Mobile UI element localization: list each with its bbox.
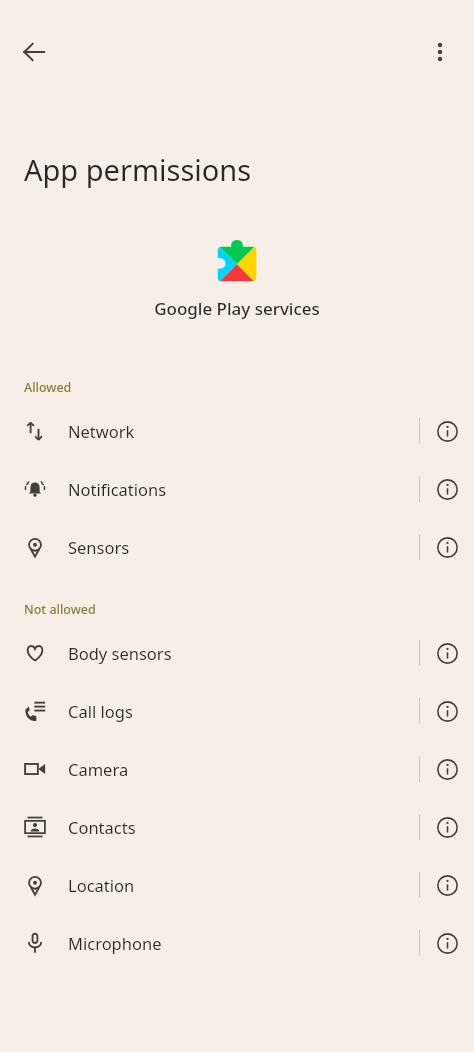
staticText: Location (68, 874, 419, 896)
staticText: Google Play services (154, 297, 320, 320)
staticText: Sensors (68, 536, 419, 558)
staticText: Body sensors (68, 642, 419, 664)
button[interactable]: More options (416, 28, 464, 76)
staticText: Allowed (24, 379, 72, 396)
button[interactable]: About Notifications permission (420, 460, 474, 518)
button[interactable]: Notifications (0, 460, 474, 518)
staticText: Contacts (68, 816, 419, 838)
staticText: Microphone (68, 932, 419, 954)
button[interactable]: Location (0, 856, 474, 914)
button[interactable]: About Camera permission (420, 740, 474, 798)
button[interactable]: About Body sensors permission (420, 624, 474, 682)
button[interactable]: Network (0, 402, 474, 460)
button[interactable]: About Contacts permission (420, 798, 474, 856)
button[interactable]: Call logs (0, 682, 474, 740)
button[interactable]: About Location permission (420, 856, 474, 914)
staticText: Not allowed (24, 601, 96, 618)
button[interactable]: Back (10, 28, 58, 76)
button[interactable]: Contacts (0, 798, 474, 856)
button[interactable]: About Call logs permission (420, 682, 474, 740)
staticText: Call logs (68, 700, 419, 722)
button[interactable]: Camera (0, 740, 474, 798)
button[interactable]: About Microphone permission (420, 914, 474, 972)
staticText: Camera (68, 758, 419, 780)
staticText: App permissions (24, 150, 252, 189)
button[interactable]: Sensors (0, 518, 474, 576)
button[interactable]: Microphone (0, 914, 474, 972)
button[interactable]: About Network permission (420, 402, 474, 460)
staticText: Network (68, 420, 419, 442)
button[interactable]: About Sensors permission (420, 518, 474, 576)
staticText: Notifications (68, 478, 419, 500)
button[interactable]: Body sensors (0, 624, 474, 682)
